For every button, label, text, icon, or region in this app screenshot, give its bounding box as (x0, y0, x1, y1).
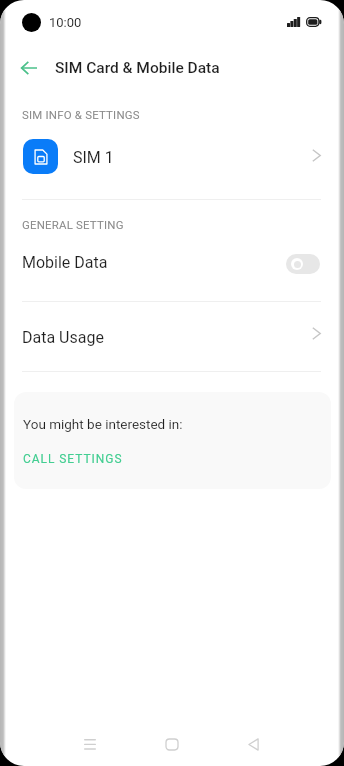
staticText: Data Usage (22, 328, 104, 347)
staticText: SIM INFO & SETTINGS (22, 108, 140, 121)
staticText: GENERAL SETTING (22, 218, 124, 231)
button[interactable]: SIM 1 (0, 128, 344, 184)
button[interactable]: Home (150, 722, 194, 766)
button[interactable]: Back (231, 722, 275, 766)
staticText: You might be interested in: (23, 416, 183, 432)
button[interactable]: CALL SETTINGS (23, 452, 123, 466)
staticText: 10:00 (49, 15, 82, 30)
staticText: SIM Card & Mobile Data (55, 59, 220, 77)
staticText: CALL SETTINGS (23, 452, 123, 466)
button[interactable]: Back (11, 52, 47, 84)
button[interactable]: Recent apps (68, 722, 112, 766)
staticText: Mobile Data (22, 253, 108, 272)
staticText: SIM 1 (73, 148, 114, 167)
button[interactable]: Mobile Data (0, 234, 344, 294)
button[interactable]: Data Usage (0, 308, 344, 366)
